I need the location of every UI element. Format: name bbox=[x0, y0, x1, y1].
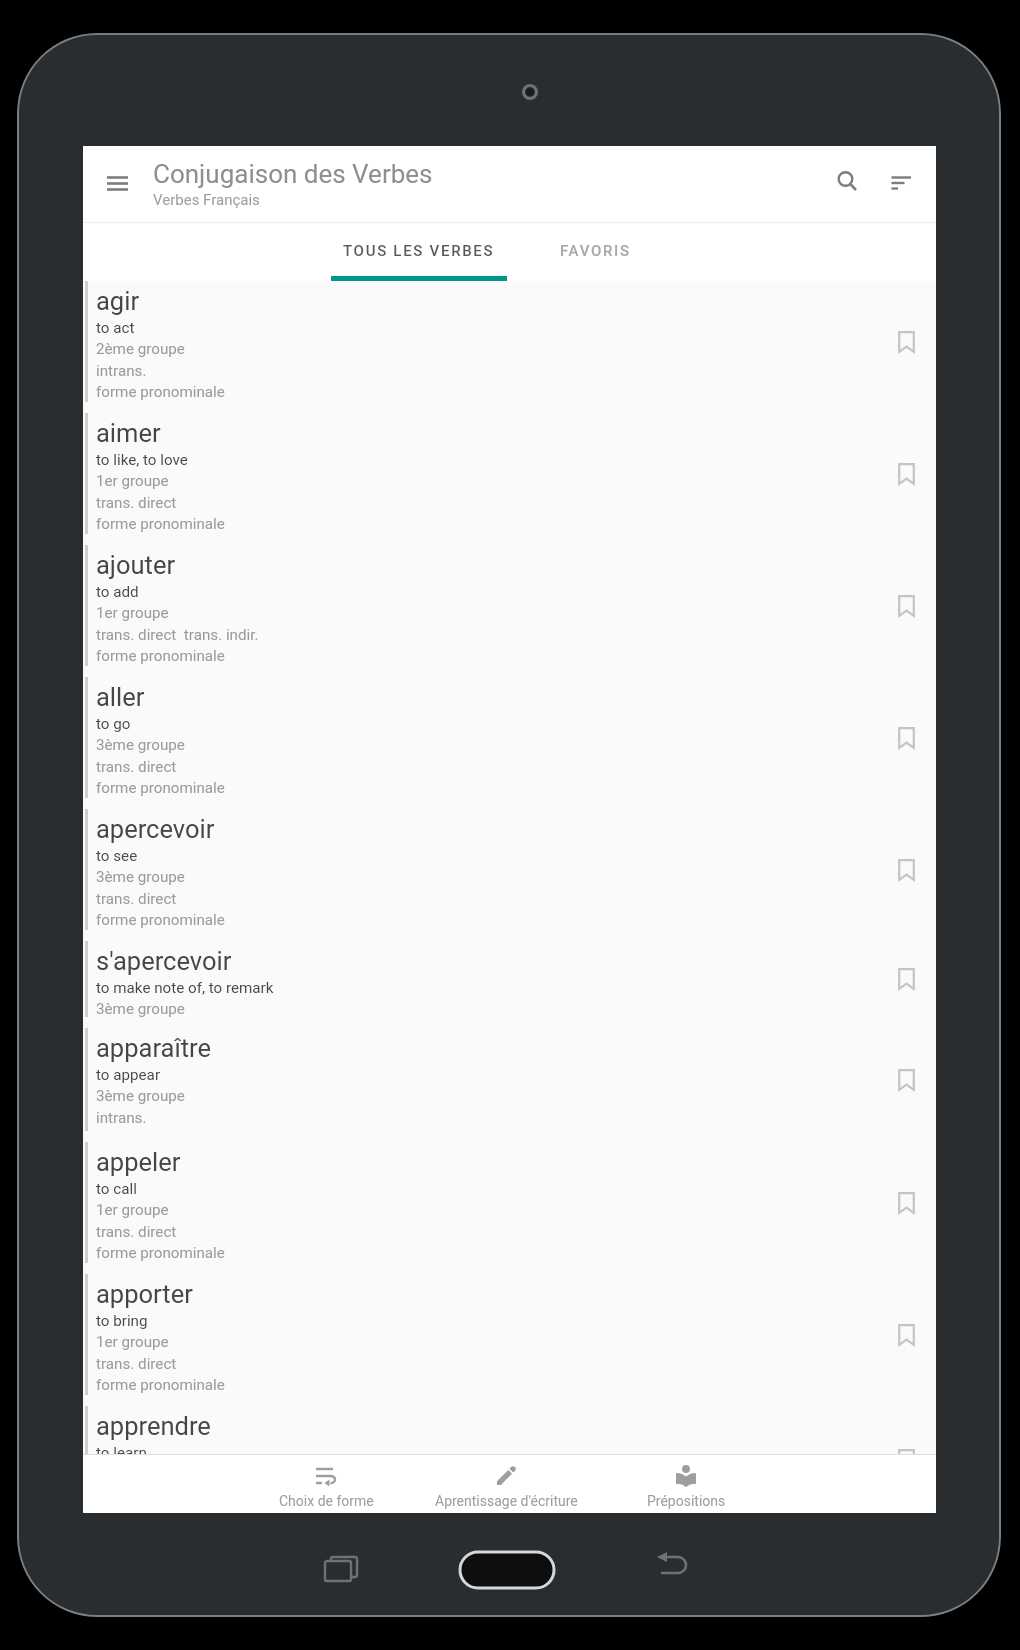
staticText: forme pronominale bbox=[96, 515, 225, 533]
button[interactable]: ajouter bbox=[83, 545, 936, 666]
staticText: 3ème groupe bbox=[96, 1000, 185, 1018]
staticText: apprendre bbox=[96, 1411, 211, 1441]
staticText: aller bbox=[96, 682, 145, 712]
button[interactable]: TOUS LES VERBES bbox=[331, 223, 507, 279]
button[interactable] bbox=[107, 176, 128, 191]
button[interactable]: apporter bbox=[83, 1274, 936, 1395]
staticText: 1er groupe bbox=[96, 472, 169, 490]
staticText: 1er groupe bbox=[96, 1333, 169, 1351]
staticText: forme pronominale bbox=[96, 779, 225, 797]
button[interactable] bbox=[898, 1069, 915, 1091]
button[interactable] bbox=[898, 1449, 915, 1471]
staticText: intrans. bbox=[96, 1109, 147, 1127]
staticText: Aprentissage d'écriture bbox=[435, 1493, 578, 1509]
staticText: s'apercevoir bbox=[96, 946, 232, 976]
staticText: 3ème groupe bbox=[96, 1087, 185, 1105]
button[interactable] bbox=[898, 331, 915, 353]
button[interactable]: aller bbox=[83, 677, 936, 798]
staticText: trans. direct bbox=[96, 1355, 177, 1373]
button[interactable] bbox=[898, 859, 915, 881]
staticText: ajouter bbox=[96, 550, 176, 580]
staticText: forme pronominale bbox=[96, 1376, 225, 1394]
staticText: to like, to love bbox=[96, 451, 188, 469]
staticText: 3ème groupe bbox=[96, 868, 185, 886]
staticText: intrans. bbox=[96, 362, 147, 380]
staticText: Conjugaison des Verbes bbox=[153, 159, 433, 189]
button[interactable]: s'apercevoir bbox=[83, 941, 936, 1017]
staticText: trans. direct bbox=[96, 494, 177, 512]
staticText: FAVORIS bbox=[560, 242, 631, 260]
button[interactable]: apparaître bbox=[83, 1028, 936, 1131]
staticText: to act bbox=[96, 319, 135, 337]
button[interactable]: apercevoir bbox=[83, 809, 936, 930]
button[interactable]: Prépositions bbox=[596, 1455, 776, 1513]
staticText: to learn bbox=[96, 1444, 147, 1462]
staticText: 1er groupe bbox=[96, 604, 169, 622]
staticText: forme pronominale bbox=[96, 911, 225, 929]
staticText: trans. direct bbox=[96, 758, 177, 776]
staticText: trans. direct bbox=[96, 1223, 177, 1241]
button[interactable]: agir bbox=[83, 281, 936, 402]
button[interactable] bbox=[898, 463, 915, 485]
staticText: to call bbox=[96, 1180, 137, 1198]
button[interactable] bbox=[898, 1192, 915, 1214]
staticText: to add bbox=[96, 583, 139, 601]
staticText: to appear bbox=[96, 1066, 161, 1084]
staticText: apporter bbox=[96, 1279, 193, 1309]
staticText: Choix de forme bbox=[279, 1493, 374, 1509]
staticText: forme pronominale bbox=[96, 383, 225, 401]
staticText: forme pronominale bbox=[96, 1244, 225, 1262]
staticText: 1er groupe bbox=[96, 1201, 169, 1219]
staticText: 3ème groupe bbox=[96, 736, 185, 754]
button[interactable] bbox=[889, 174, 913, 198]
button[interactable] bbox=[898, 727, 915, 749]
staticText: trans. direct trans. indir. bbox=[96, 626, 259, 644]
staticText: forme pronominale bbox=[96, 647, 225, 665]
staticText: to go bbox=[96, 715, 131, 733]
button[interactable] bbox=[898, 968, 915, 990]
staticText: to bring bbox=[96, 1312, 148, 1330]
button[interactable]: apprendre bbox=[83, 1406, 936, 1513]
button[interactable] bbox=[898, 595, 915, 617]
button[interactable]: Choix de forme bbox=[236, 1455, 416, 1513]
button[interactable]: appeler bbox=[83, 1142, 936, 1263]
staticText: Prépositions bbox=[647, 1493, 726, 1509]
staticText: to make note of, to remark bbox=[96, 979, 274, 997]
staticText: trans. direct bbox=[96, 890, 177, 908]
staticText: apparaître bbox=[96, 1033, 211, 1063]
staticText: agir bbox=[96, 286, 140, 316]
button[interactable]: Aprentissage d'écriture bbox=[416, 1455, 596, 1513]
button[interactable] bbox=[898, 1324, 915, 1346]
staticText: aimer bbox=[96, 418, 161, 448]
button[interactable] bbox=[835, 169, 859, 193]
staticText: Verbes Français bbox=[153, 191, 260, 209]
button[interactable]: FAVORIS bbox=[507, 223, 684, 279]
staticText: TOUS LES VERBES bbox=[343, 242, 495, 260]
staticText: appeler bbox=[96, 1147, 181, 1177]
staticText: 2ème groupe bbox=[96, 340, 185, 358]
staticText: to see bbox=[96, 847, 138, 865]
staticText: apercevoir bbox=[96, 814, 215, 844]
button[interactable]: aimer bbox=[83, 413, 936, 534]
